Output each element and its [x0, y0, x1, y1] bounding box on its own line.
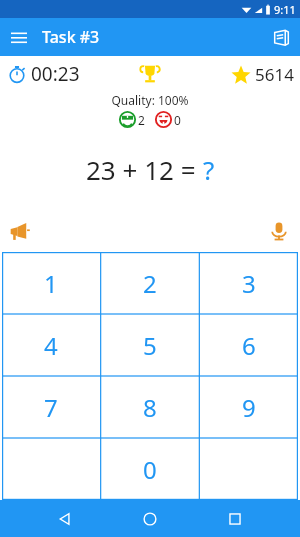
button[interactable]: 1	[2, 252, 100, 314]
button[interactable]: 0	[100, 438, 199, 500]
staticText: 1	[44, 267, 58, 300]
button[interactable]: 6	[199, 314, 298, 376]
button[interactable]: Score	[230, 63, 294, 86]
staticText: 6	[242, 329, 256, 362]
button[interactable]: Trophy	[135, 59, 165, 89]
button[interactable]: 5	[100, 314, 199, 376]
button[interactable]: 7	[2, 376, 100, 438]
button[interactable]: Back	[45, 500, 85, 537]
staticText: 5	[143, 329, 157, 362]
button[interactable]: 8	[100, 376, 199, 438]
other: Correct answers	[119, 111, 136, 128]
staticText: 0	[143, 453, 157, 486]
staticText: 9	[242, 391, 256, 424]
staticText: 7	[44, 391, 58, 424]
button[interactable]	[199, 438, 298, 500]
staticText: 9:11	[274, 2, 296, 17]
button[interactable]: 9	[199, 376, 298, 438]
staticText: 23 + 12 =	[86, 152, 203, 187]
staticText: ?	[203, 152, 215, 187]
other: Timer	[6, 63, 28, 85]
staticText: 00:23	[31, 61, 80, 87]
staticText: 8	[143, 391, 157, 424]
staticText: 4	[44, 329, 58, 362]
button[interactable]: Voice input	[262, 214, 296, 248]
button[interactable]	[2, 438, 100, 500]
button[interactable]: Timer	[6, 61, 80, 87]
staticText: 3	[242, 267, 256, 300]
button[interactable]: 3	[199, 252, 298, 314]
button[interactable]: Wrong answers	[155, 111, 181, 128]
other: Score	[230, 64, 252, 86]
button[interactable]: Recent apps	[215, 500, 255, 537]
staticText: 2	[143, 267, 157, 300]
staticText: 0	[174, 112, 181, 128]
button[interactable]: Speak question	[2, 214, 36, 248]
button[interactable]: Dictionary	[262, 18, 300, 56]
other: Wrong answers	[155, 111, 172, 128]
staticText: 5614	[255, 63, 294, 86]
button[interactable]: 2	[100, 252, 199, 314]
staticText: Quality: 100%	[0, 92, 300, 108]
button[interactable]: Correct answers	[119, 111, 145, 128]
staticText: 2	[138, 112, 145, 128]
staticText: Task #3	[42, 26, 100, 48]
button[interactable]: Home	[130, 500, 170, 537]
button[interactable]: Menu	[0, 18, 38, 56]
button[interactable]: 4	[2, 314, 100, 376]
